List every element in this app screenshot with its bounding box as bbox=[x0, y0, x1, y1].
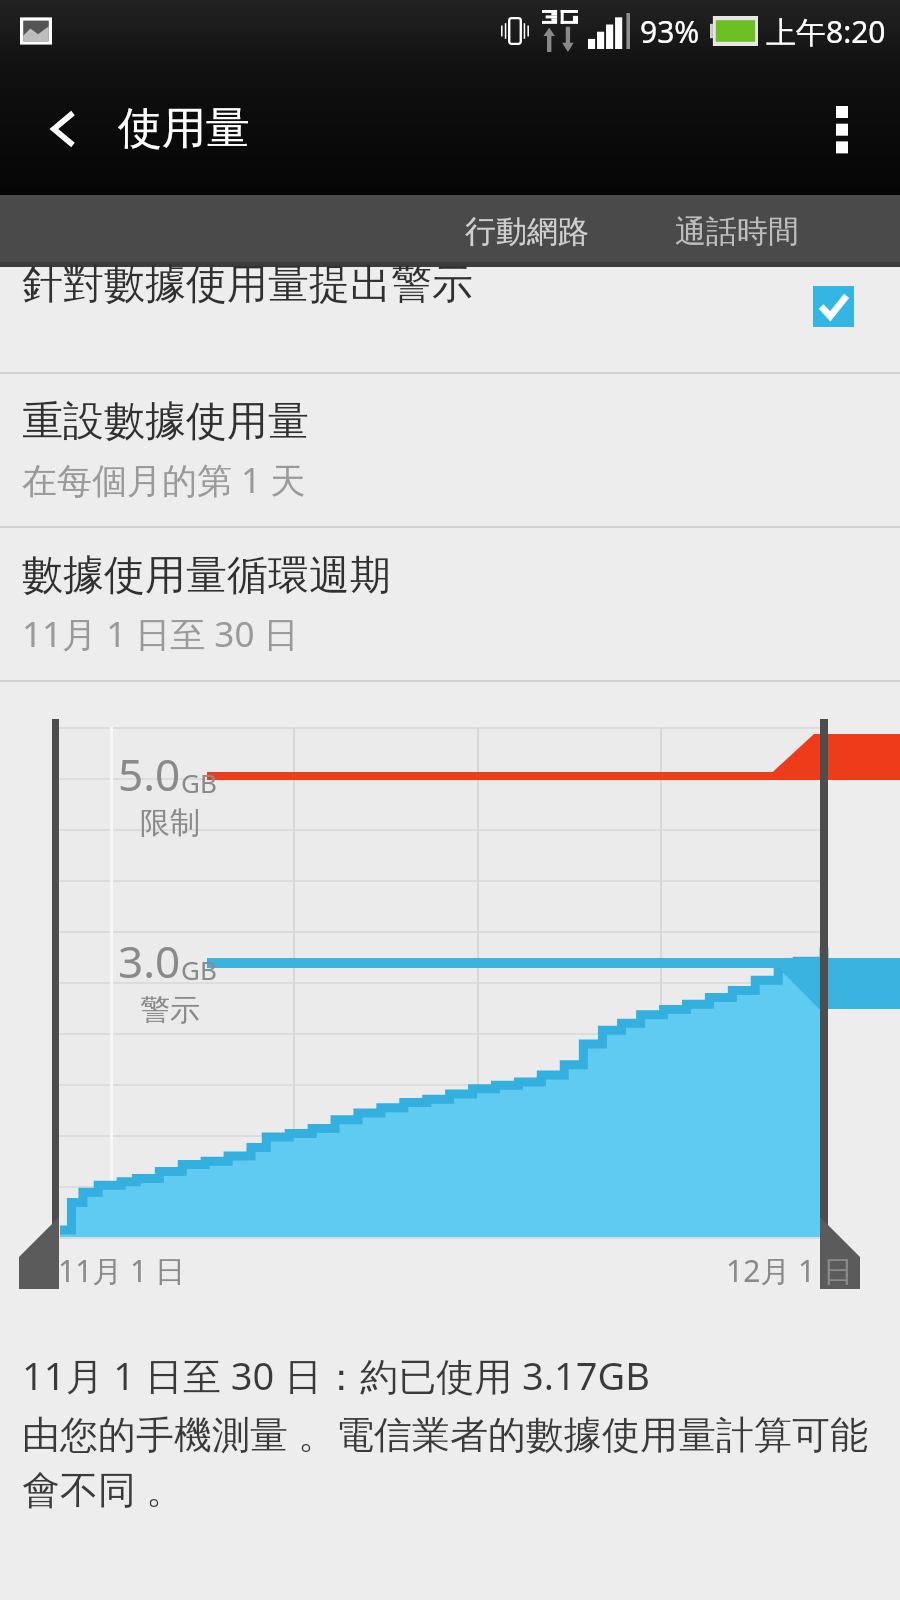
button[interactable]: 重設數據使用量 bbox=[0, 374, 900, 526]
staticText: 在每個月的第 1 天 bbox=[22, 456, 306, 504]
button[interactable]: 通話時間 bbox=[675, 195, 900, 267]
button[interactable]: 行動網路 bbox=[378, 195, 675, 267]
button[interactable]: 數據使用量循環週期 bbox=[0, 528, 900, 680]
staticText: 通話時間 bbox=[675, 212, 799, 251]
staticText: 重設數據使用量 bbox=[22, 396, 309, 448]
staticText: 上午8:20 bbox=[766, 11, 886, 52]
staticText: 11月 1 日至 30 日：約已使用 3.17GB bbox=[22, 1349, 650, 1401]
staticText: 數據使用量循環週期 bbox=[22, 550, 391, 602]
staticText: 93% bbox=[640, 11, 700, 52]
staticText: 3.0 bbox=[118, 931, 181, 991]
staticText: 限制 bbox=[140, 804, 200, 842]
staticText: 5.0 bbox=[118, 744, 181, 804]
button[interactable]: More options bbox=[810, 97, 874, 161]
staticText: 行動網路 bbox=[465, 212, 589, 251]
staticText: GB bbox=[181, 952, 217, 987]
staticText: 由您的手機測量 。電信業者的數據使用量計算可能會不同 。 bbox=[22, 1407, 878, 1515]
staticText: GB bbox=[181, 765, 217, 800]
staticText: 針對數據使用量提出警示 bbox=[22, 259, 473, 311]
staticText: 11月 1 日 bbox=[58, 1250, 186, 1291]
staticText: 使用量 bbox=[118, 101, 250, 156]
staticText: 11月 1 日至 30 日 bbox=[22, 610, 299, 658]
button[interactable]: Back bbox=[34, 98, 96, 160]
button[interactable]: 針對數據使用量提出警示 bbox=[0, 267, 900, 372]
staticText: 12月 1 日 bbox=[726, 1250, 854, 1291]
staticText: 警示 bbox=[140, 991, 200, 1029]
